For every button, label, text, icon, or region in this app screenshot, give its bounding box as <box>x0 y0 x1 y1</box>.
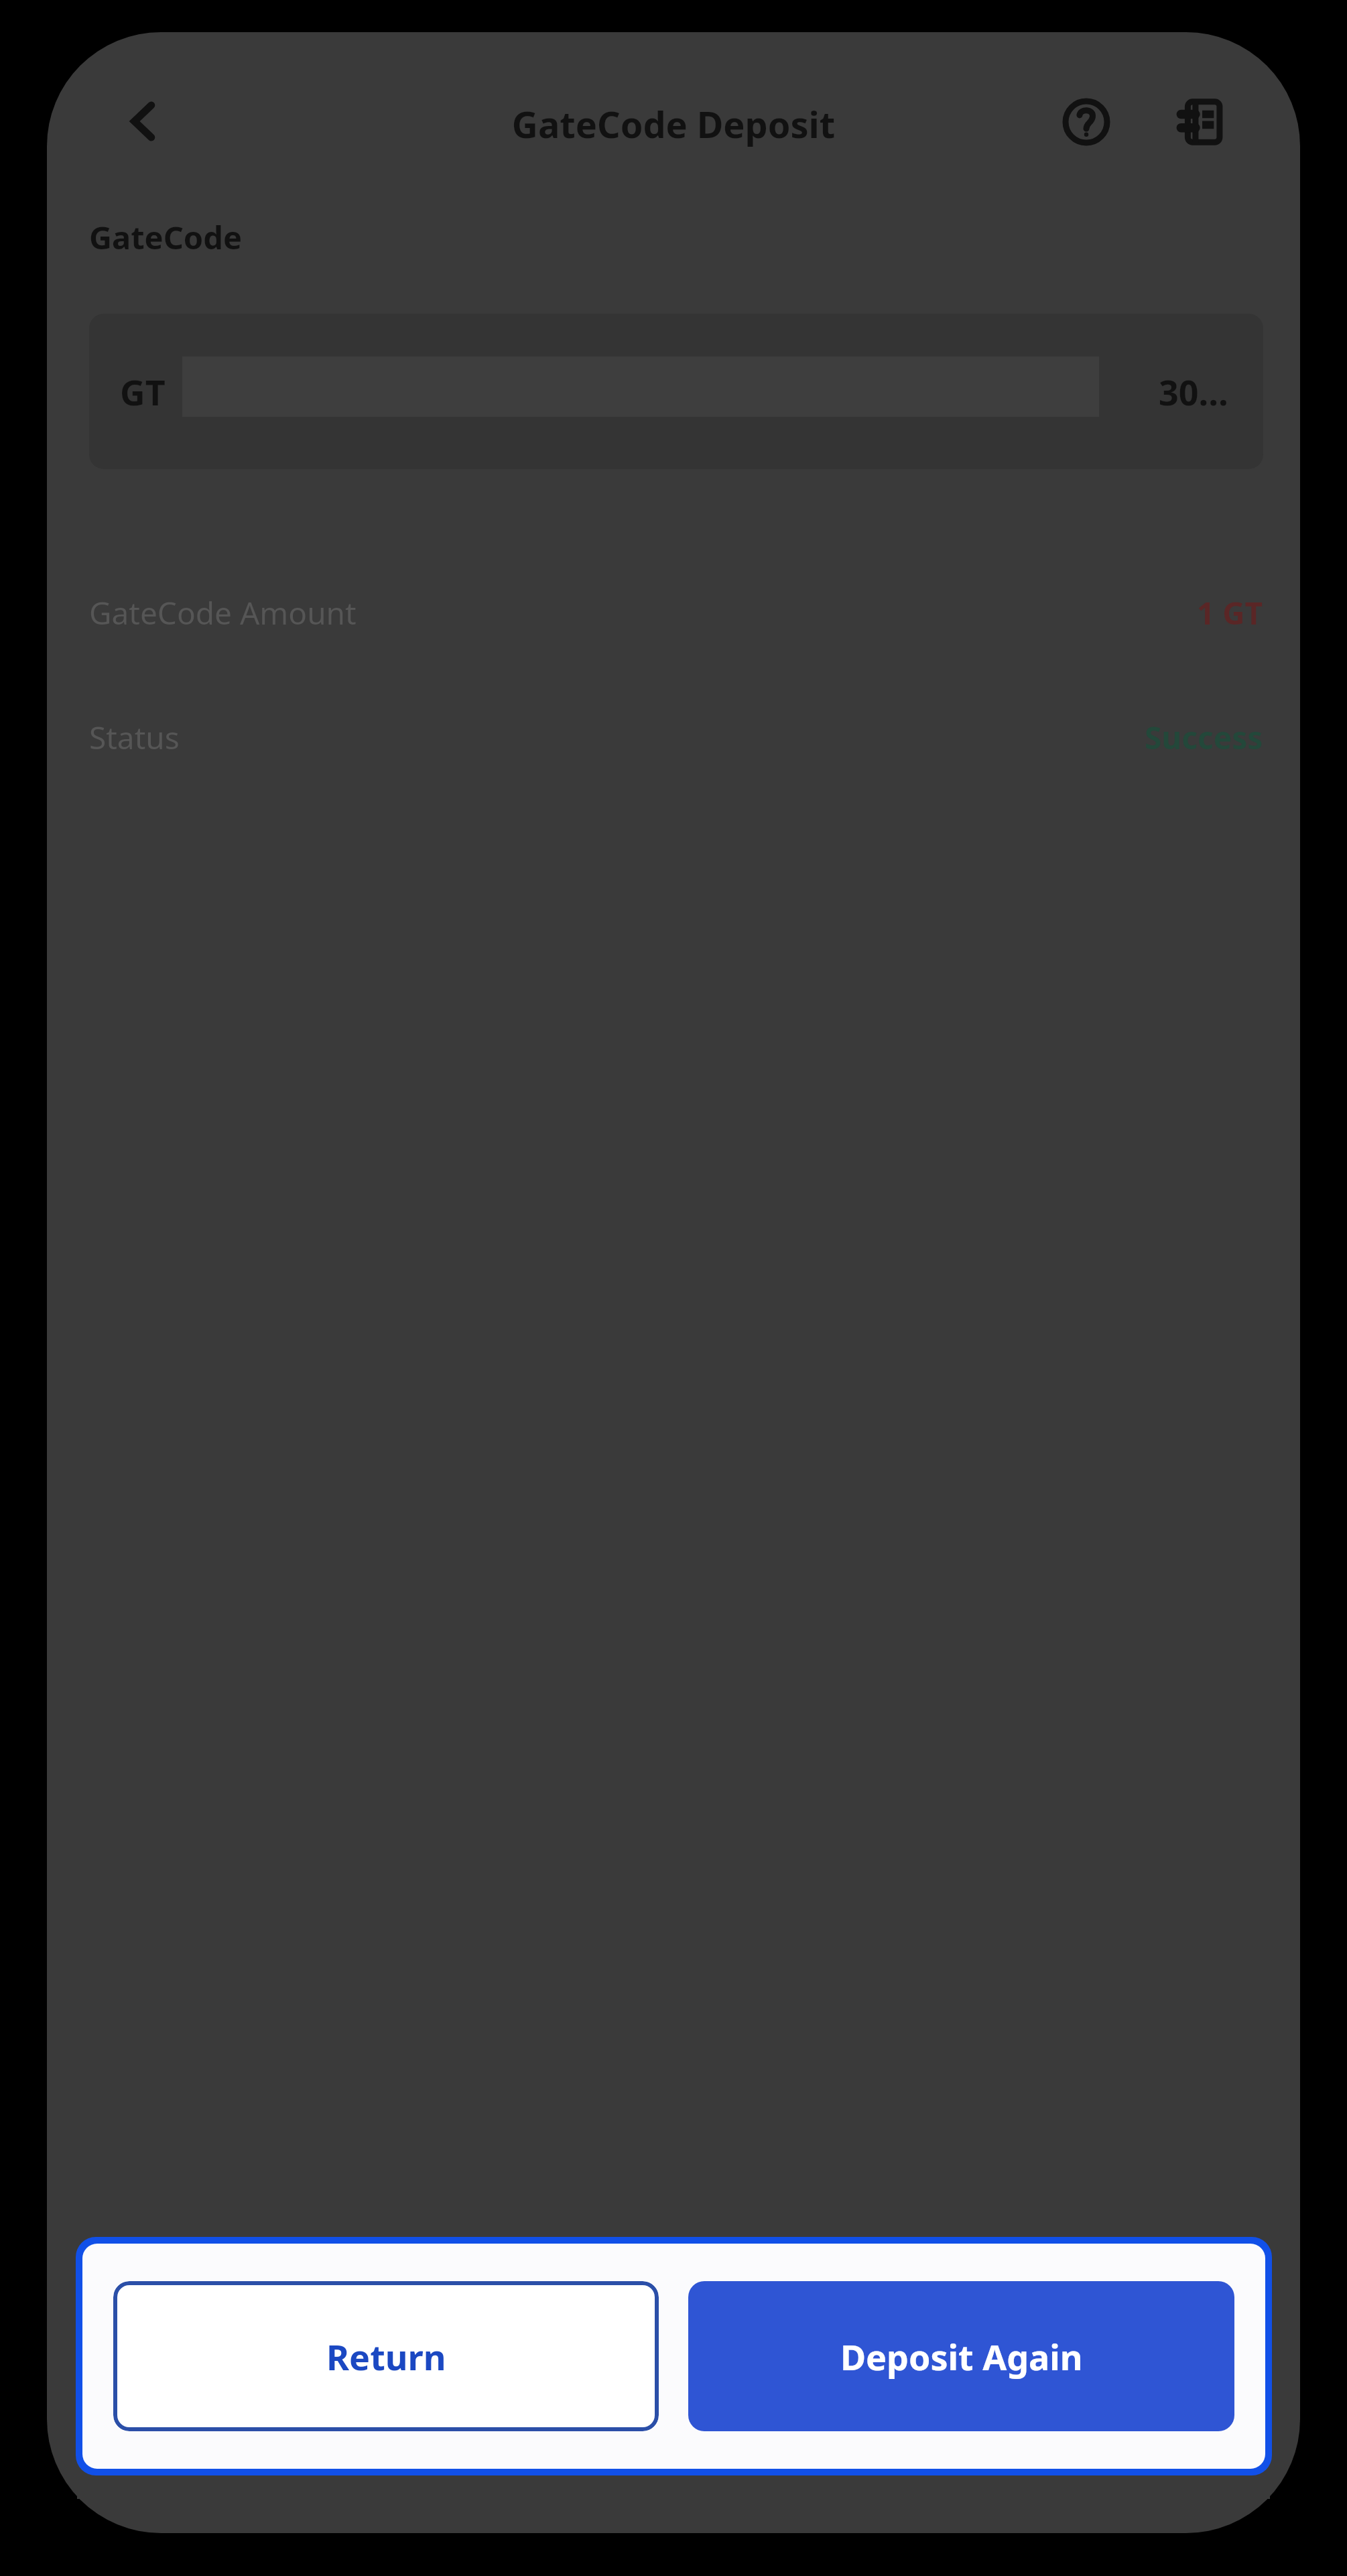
button[interactable]: GT <box>89 314 1263 469</box>
button[interactable]: Records <box>1165 84 1240 159</box>
staticText: GateCode <box>89 216 242 259</box>
staticText: GateCode Deposit <box>47 99 1300 149</box>
staticText: Success <box>1145 716 1263 759</box>
button[interactable]: Back <box>107 84 181 158</box>
staticText: GateCode Amount <box>89 592 357 634</box>
button[interactable]: Return <box>113 2281 659 2431</box>
staticText: Status <box>89 716 180 759</box>
staticText: 30… <box>1159 368 1228 415</box>
staticText: Deposit Again <box>840 2333 1083 2380</box>
button[interactable]: Help <box>1049 84 1124 159</box>
staticText: 1 GT <box>1197 592 1263 634</box>
button[interactable]: Deposit Again <box>688 2281 1234 2431</box>
staticText: GT <box>120 368 166 415</box>
staticText: Return <box>326 2333 446 2380</box>
